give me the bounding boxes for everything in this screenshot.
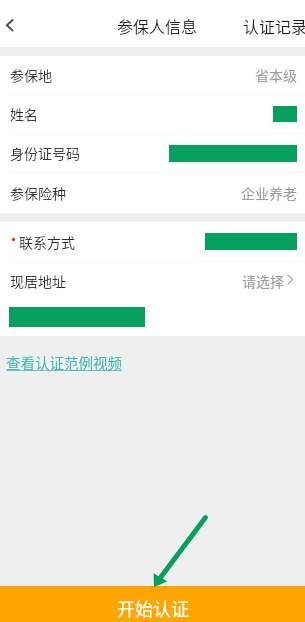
staticText: 现居地址 — [10, 271, 66, 291]
staticText: 认证记录 — [243, 14, 305, 37]
staticText: 参保险种 — [10, 183, 66, 203]
button[interactable]: 姓名 — [0, 95, 305, 133]
button[interactable]: 现居地址 — [0, 262, 305, 300]
staticText: 企业养老 — [241, 183, 297, 203]
button[interactable]: 参保地 — [0, 56, 305, 94]
button[interactable]: Back — [0, 0, 32, 47]
button[interactable]: 联系方式 — [0, 222, 305, 261]
staticText: 参保人信息 — [117, 14, 198, 37]
button[interactable]: 参保险种 — [0, 173, 305, 213]
staticText: 姓名 — [10, 104, 38, 124]
staticText: 参保地 — [10, 65, 52, 85]
staticText: 查看认证范例视频 — [6, 352, 122, 373]
button[interactable]: 参保人信息 — [117, 14, 198, 37]
staticText: 身份证号码 — [10, 143, 80, 163]
staticText: 联系方式 — [19, 232, 75, 252]
staticText: 省本级 — [255, 65, 297, 85]
button[interactable]: 认证记录 — [243, 14, 305, 37]
button[interactable]: 查看认证范例视频 — [6, 352, 122, 373]
button[interactable]: 开始认证 — [0, 586, 305, 622]
button[interactable]: 身份证号码 — [0, 134, 305, 172]
staticText: 请选择 — [242, 271, 284, 291]
staticText: 开始认证 — [117, 595, 189, 621]
